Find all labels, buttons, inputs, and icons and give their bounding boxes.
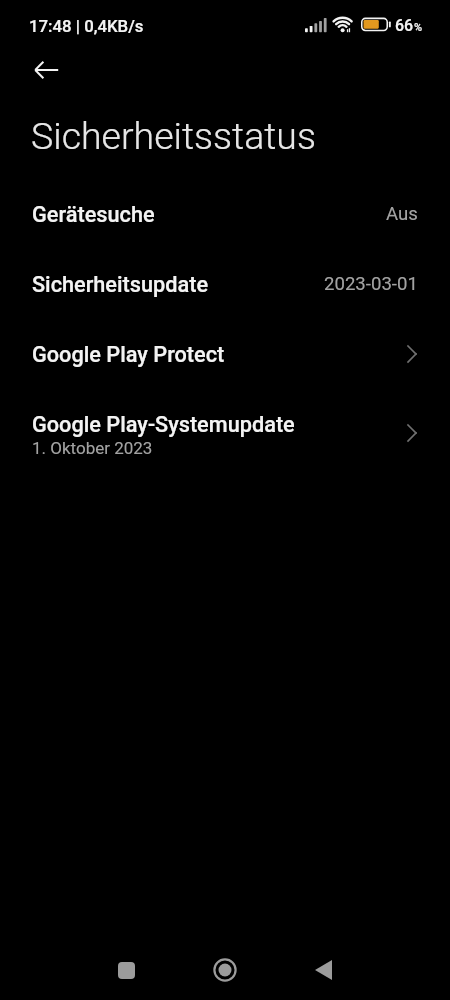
- button[interactable]: Gerätesuche: [0, 183, 450, 253]
- staticText: 2023-03-01: [324, 273, 418, 295]
- staticText: Sicherheitsupdate: [32, 272, 209, 297]
- staticText: %: [414, 21, 423, 34]
- staticText: Google Play-Systemupdate: [32, 412, 295, 437]
- button[interactable]: Sicherheitsupdate: [0, 253, 450, 323]
- button[interactable]: Back: [22, 46, 70, 94]
- staticText: Google Play Protect: [32, 342, 225, 367]
- staticText: Sicherheitsstatus: [31, 114, 316, 158]
- button[interactable]: Home: [201, 946, 249, 994]
- staticText: 66: [395, 16, 414, 35]
- staticText: 1. Oktober 2023: [32, 438, 153, 458]
- button[interactable]: Back: [299, 946, 347, 994]
- staticText: Gerätesuche: [32, 202, 155, 227]
- staticText: Aus: [386, 203, 418, 225]
- staticText: 17:48 | 0,4KB/s: [29, 16, 144, 36]
- button[interactable]: Recent apps: [102, 946, 150, 994]
- button[interactable]: Google Play-Systemupdate: [0, 393, 450, 463]
- button[interactable]: Google Play Protect: [0, 323, 450, 393]
